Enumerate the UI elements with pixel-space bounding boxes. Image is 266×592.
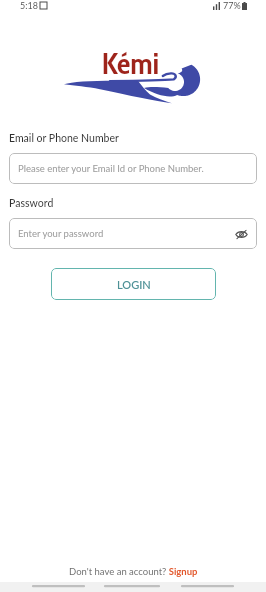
staticText: LOGIN bbox=[117, 278, 151, 291]
button[interactable]: LOGIN bbox=[51, 268, 216, 300]
staticText: Please enter your Email Id or Phone Numb… bbox=[18, 163, 204, 174]
staticText: Password bbox=[9, 197, 54, 210]
staticText: 5:18 bbox=[20, 0, 38, 11]
staticText: Enter your password bbox=[18, 228, 104, 239]
staticText: Kémi bbox=[102, 45, 159, 81]
staticText: 77% bbox=[223, 0, 241, 11]
button[interactable]: Enter your password bbox=[9, 218, 257, 249]
button[interactable]: Please enter your Email Id or Phone Numb… bbox=[9, 153, 257, 184]
button[interactable]: Show password bbox=[233, 226, 249, 242]
button[interactable]: Don't have an account? Signup bbox=[69, 566, 198, 577]
staticText: Email or Phone Number bbox=[9, 132, 119, 145]
